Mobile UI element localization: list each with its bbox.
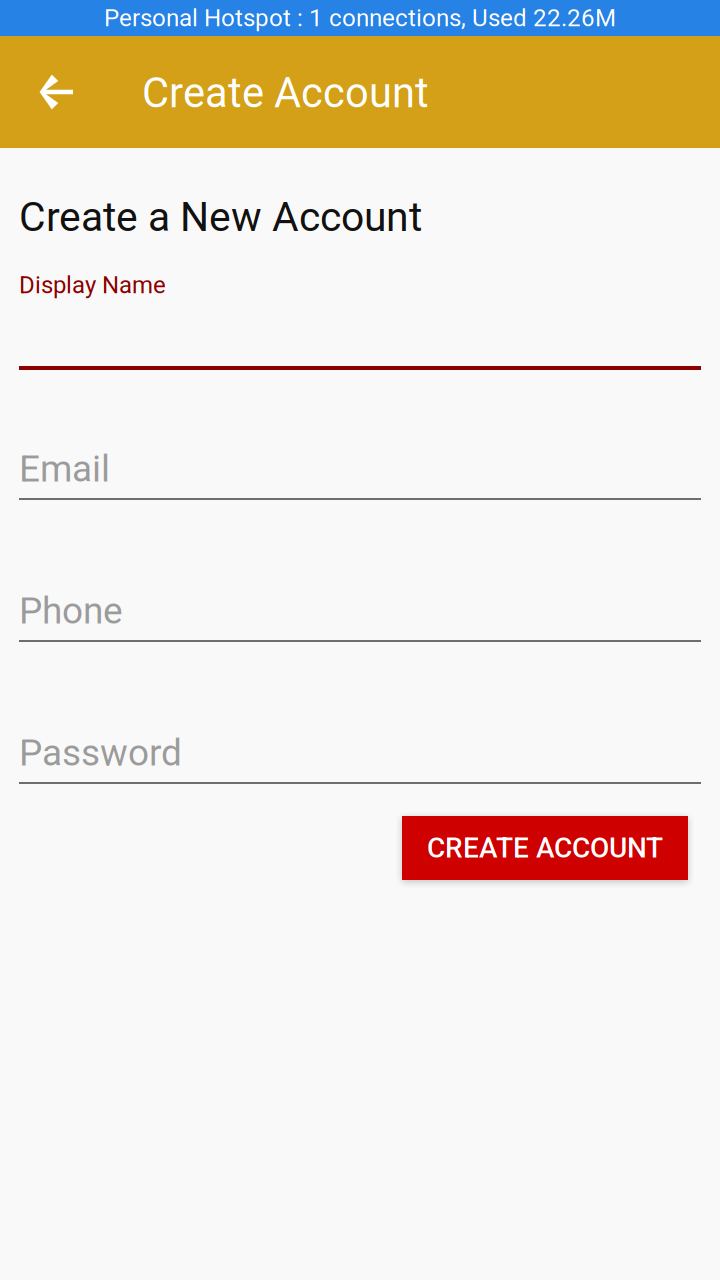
staticText: Phone bbox=[19, 589, 123, 633]
staticText: Create Account bbox=[142, 69, 429, 117]
staticText: Email bbox=[19, 447, 110, 491]
staticText: Personal Hotspot : 1 connections, Used 2… bbox=[104, 4, 616, 32]
staticText: Display Name bbox=[19, 271, 166, 299]
button[interactable]: Back bbox=[0, 36, 113, 148]
staticText: CREATE ACCOUNT bbox=[427, 832, 663, 864]
button[interactable]: CREATE ACCOUNT bbox=[402, 816, 688, 880]
staticText: Create a New Account bbox=[19, 193, 422, 241]
button[interactable]: Password bbox=[19, 734, 701, 784]
button[interactable]: Phone bbox=[19, 592, 701, 642]
staticText: Password bbox=[19, 731, 182, 775]
button[interactable]: Email bbox=[19, 450, 701, 500]
button[interactable]: Display Name bbox=[19, 272, 701, 370]
